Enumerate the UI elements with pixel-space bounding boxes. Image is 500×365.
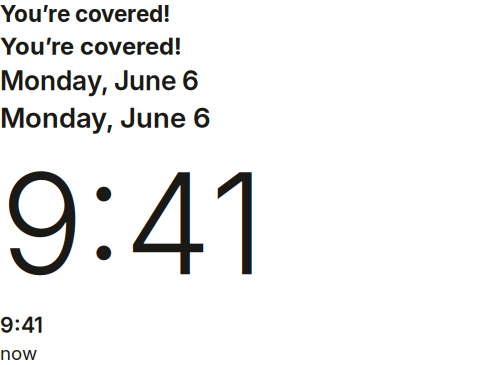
staticText: Monday, June 6 — [0, 64, 199, 97]
staticText: You’re covered! — [0, 31, 182, 60]
staticText: 9:41 — [0, 139, 265, 308]
staticText: Monday, June 6 — [0, 101, 211, 135]
staticText: now — [0, 342, 37, 364]
staticText: You’re covered! — [0, 0, 170, 27]
staticText: 9:41 — [0, 312, 43, 338]
